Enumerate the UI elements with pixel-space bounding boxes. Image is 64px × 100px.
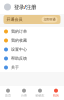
staticText: 登录/注册 [14,3,36,11]
staticText: 帮助反馈 [11,56,27,61]
button[interactable]: 设置中心 [0,45,64,54]
staticText: 我的收藏 [11,38,27,43]
button[interactable]: 关于 [0,63,64,72]
staticText: 分类 [21,94,27,97]
staticText: 我的订单 [11,29,27,34]
staticText: 立即开通 [43,17,55,21]
button[interactable]: 购物车 [32,89,48,97]
staticText: 购物车 [35,94,44,97]
button[interactable]: 我的收藏 [0,36,64,45]
button[interactable]: 首页 [0,89,16,97]
button[interactable]: 帮助反馈 [0,54,64,63]
staticText: 开通会员 [6,17,22,22]
button[interactable]: 我的订单 [0,27,64,36]
button[interactable]: 我的 [48,89,64,97]
staticText: 我的 [53,94,59,97]
staticText: 首页 [5,94,11,97]
staticText: 关于 [11,65,19,70]
button[interactable]: 分类 [16,89,32,97]
staticText: 设置中心 [11,47,27,52]
